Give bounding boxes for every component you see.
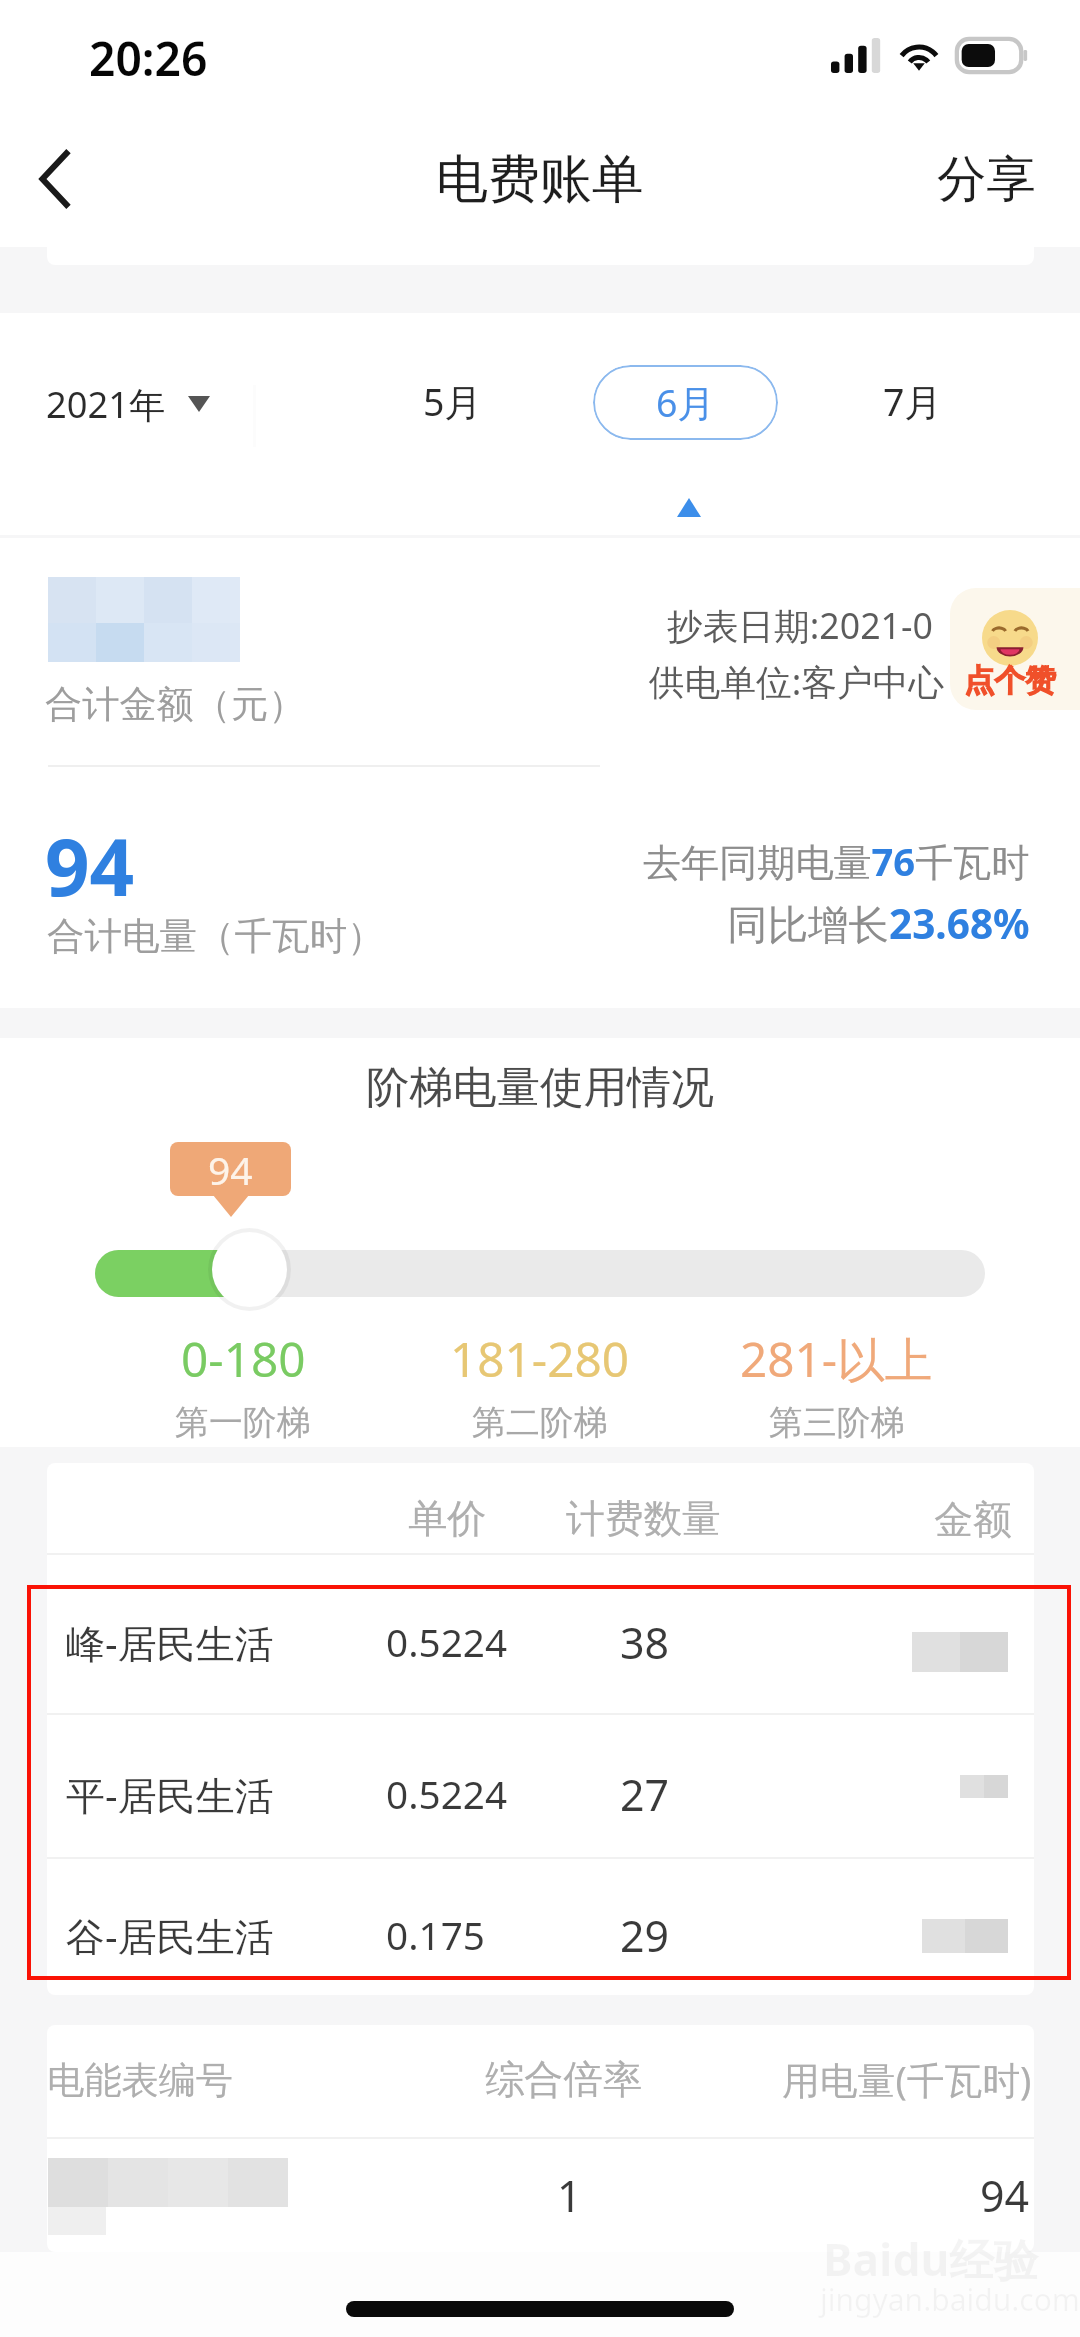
staticText: 5月	[423, 376, 482, 427]
staticText: 0.5224	[386, 1768, 508, 1821]
staticText: 281-以上	[740, 1326, 933, 1391]
button[interactable]: 5月	[392, 364, 512, 439]
staticText: 2021年	[46, 379, 166, 429]
staticText: 94	[208, 1143, 253, 1196]
staticText: 分享	[937, 148, 1036, 210]
staticText: 用电量(千瓦时)	[782, 2054, 1032, 2106]
staticText: 峰-居民生活	[66, 1616, 274, 1669]
staticText: 20:26	[89, 27, 208, 90]
button[interactable]: 6月	[593, 365, 778, 440]
staticText: 0.5224	[386, 1616, 508, 1669]
button[interactable]: 2021年	[40, 369, 216, 439]
button[interactable]: Back	[0, 110, 110, 247]
staticText: 电能表编号	[47, 2057, 233, 2104]
staticText: Baidu经验	[823, 2229, 1039, 2290]
button[interactable]: 谷-居民生活	[47, 1859, 1034, 1995]
staticText: 6月	[656, 377, 715, 428]
staticText: 合计金额（元）	[45, 681, 306, 728]
staticText: 去年同期电量76千瓦时	[643, 835, 1030, 887]
staticText: 金额	[934, 1495, 1012, 1544]
staticText: 94	[45, 813, 135, 919]
staticText: 电费账单	[436, 147, 644, 212]
staticText: 7月	[883, 376, 942, 427]
staticText: 29	[620, 1906, 670, 1964]
staticText: 27	[620, 1765, 670, 1823]
button[interactable]: Like	[950, 588, 1080, 710]
button[interactable]: 1	[47, 2139, 1034, 2250]
staticText: 94	[980, 2166, 1030, 2224]
staticText: 合计电量（千瓦时）	[47, 913, 385, 960]
button[interactable]: 平-居民生活	[47, 1715, 1034, 1857]
staticText: 点个赞	[964, 662, 1056, 701]
staticText: 平-居民生活	[66, 1768, 274, 1821]
staticText: 第三阶梯	[769, 1401, 905, 1444]
button[interactable]: 7月	[852, 364, 972, 439]
staticText: 单价	[408, 1494, 487, 1544]
staticText: 第一阶梯	[175, 1401, 311, 1444]
staticText: 0-180	[181, 1326, 306, 1391]
staticText: jingyan.baidu.com	[820, 2279, 1080, 2320]
staticText: 谷-居民生活	[66, 1909, 274, 1962]
staticText: 综合倍率	[485, 2055, 643, 2105]
staticText: 1	[557, 2166, 582, 2224]
staticText: 抄表日期:2021-0	[667, 601, 933, 650]
button[interactable]: 分享	[897, 110, 1080, 247]
staticText: 计费数量	[566, 1495, 721, 1544]
button[interactable]: 峰-居民生活	[47, 1555, 1034, 1713]
staticText: 同比增长23.68%	[727, 896, 1030, 951]
staticText: 阶梯电量使用情况	[0, 1060, 1080, 1115]
staticText: 0.175	[386, 1909, 485, 1962]
staticText: 供电单位:客户中心	[649, 657, 945, 706]
staticText: 第二阶梯	[472, 1401, 608, 1444]
staticText: 181-280	[450, 1326, 630, 1391]
staticText: 38	[620, 1613, 670, 1671]
